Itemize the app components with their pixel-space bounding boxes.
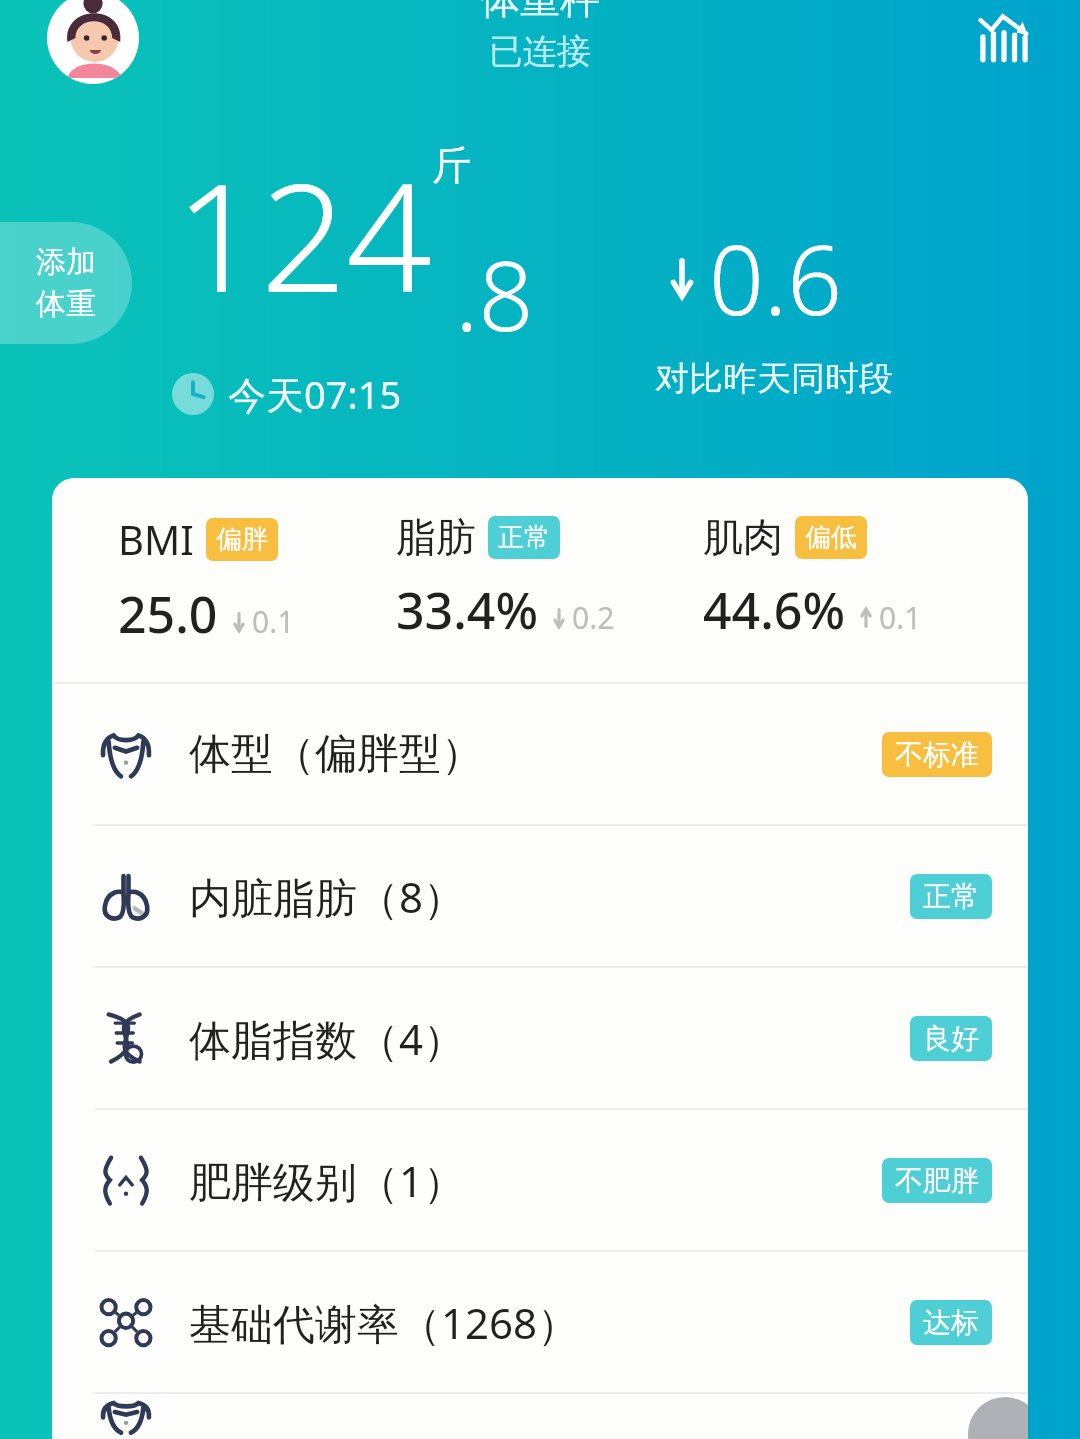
staticText: .8 (455, 228, 534, 359)
staticText: 体型（偏胖型） (189, 728, 483, 781)
staticText: 添加 (36, 243, 96, 281)
button[interactable]: 基础代谢率（1268） (52, 1252, 1028, 1392)
staticText: 正常 (498, 521, 550, 554)
staticText: 斤 (432, 140, 472, 190)
button[interactable]: More (968, 1397, 1028, 1439)
staticText: 124 (175, 132, 432, 336)
staticText: BMI (118, 512, 194, 566)
staticText: 体重秤 (480, 0, 600, 24)
button[interactable]: 肥胖级别（1） (52, 1110, 1028, 1250)
staticText: 肥胖级别（1） (189, 1152, 466, 1209)
button[interactable]: Profile (47, 0, 139, 84)
button[interactable]: 内脏脂肪（8） (52, 826, 1028, 966)
staticText: 体脂指数（4） (189, 1010, 466, 1067)
button[interactable]: 脂肪 (396, 512, 703, 644)
staticText: 33.4% (396, 576, 538, 644)
button[interactable]: Weight trend chart (966, 2, 1042, 78)
staticText: 正常 (923, 879, 979, 914)
staticText: 0.2 (572, 597, 615, 638)
button[interactable]: 体型（偏胖型） (52, 684, 1028, 824)
staticText: 肌肉 (703, 512, 783, 562)
button[interactable]: 体脂指数（4） (52, 968, 1028, 1108)
staticText: 0.1 (252, 601, 295, 642)
staticText: 基础代谢率（1268） (189, 1294, 580, 1351)
staticText: 0.1 (879, 597, 922, 638)
staticText: 0.6 (709, 212, 843, 343)
button[interactable]: BMI (118, 512, 378, 648)
button[interactable] (52, 1394, 1028, 1439)
staticText: 已连接 (489, 30, 591, 73)
staticText: 25.0 (118, 580, 218, 648)
staticText: 44.6% (703, 576, 845, 644)
staticText: 体重 (36, 285, 96, 323)
staticText: 内脏脂肪（8） (189, 868, 466, 925)
staticText: 今天07:15 (228, 368, 402, 420)
staticText: 不标准 (895, 737, 979, 772)
staticText: 达标 (923, 1305, 979, 1340)
button[interactable]: 肌肉 (703, 512, 1028, 644)
staticText: 良好 (923, 1021, 979, 1056)
staticText: 脂肪 (396, 512, 476, 562)
staticText: 偏低 (805, 521, 857, 554)
staticText: 对比昨天同时段 (655, 357, 893, 400)
button[interactable]: 添加 (0, 222, 132, 344)
staticText: 偏胖 (216, 523, 268, 556)
staticText: 不肥胖 (895, 1163, 979, 1198)
